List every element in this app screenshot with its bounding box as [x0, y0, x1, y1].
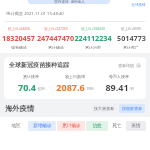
staticText: 统计截至 2021-11-01 15:48:40	[6, 11, 64, 17]
staticText: 死亡	[112, 123, 122, 129]
staticText: 224112234	[74, 33, 112, 43]
staticText: 累计确诊	[62, 123, 81, 129]
staticText: 每百人接种	[109, 74, 129, 79]
button[interactable]: 较上日+327265	[37, 25, 74, 50]
staticText: 现有确诊	[11, 45, 27, 49]
button[interactable]: 国内疫情 境外输入	[28, 0, 110, 4]
staticText: 按国家查看	[122, 106, 142, 111]
button[interactable]: 治愈	[86, 121, 108, 131]
staticText: 较上日+64456	[8, 26, 30, 31]
staticText: 万剂	[86, 87, 94, 92]
staticText: 累计死亡	[123, 45, 139, 49]
button[interactable]: 累计确诊	[57, 121, 85, 131]
staticText: 查看详情	[118, 63, 134, 68]
staticText: 累计接种	[23, 74, 39, 79]
staticText: 累计治愈	[85, 45, 101, 49]
staticText: 国内疫情 境外输入	[54, 0, 85, 4]
staticText: 较上日新增	[65, 74, 85, 79]
staticText: 新增确诊	[33, 123, 52, 129]
button[interactable]: 较上日+64456	[0, 25, 37, 50]
staticText: 剂	[130, 87, 134, 92]
staticText: 5014773	[117, 33, 146, 43]
button[interactable]: 较上日新增	[53, 74, 97, 93]
staticText: 海外疫情	[5, 104, 34, 113]
staticText: 较上日+6595	[121, 26, 141, 31]
staticText: 247447470	[37, 33, 74, 43]
button[interactable]: 按国家查看	[119, 104, 145, 113]
staticText: 按大洲查看	[94, 106, 114, 111]
button[interactable]: 全球疫情	[131, 3, 146, 8]
button[interactable]: 较上日+6595	[112, 25, 150, 50]
button[interactable]: 每百人接种	[97, 74, 141, 93]
staticText: 疫情	[131, 123, 141, 129]
staticText: 地区	[11, 123, 21, 129]
staticText: 较上日+327265	[44, 26, 68, 31]
button[interactable]: 查看详情	[118, 63, 141, 68]
staticText: 亿剂	[37, 87, 45, 92]
other: 查看详情	[136, 63, 141, 68]
staticText: 18320457	[2, 33, 35, 43]
button[interactable]: 疫情	[126, 121, 146, 131]
button[interactable]: 按大洲查看	[91, 104, 117, 113]
staticText: 全球疫情	[131, 3, 146, 8]
button[interactable]: 新增确诊	[28, 121, 56, 131]
staticText: 2087.6	[56, 81, 85, 93]
staticText: 89.41	[105, 81, 129, 93]
staticText: 较上日+358430	[81, 26, 105, 31]
button[interactable]: 较上日+358430	[74, 25, 112, 50]
staticText: 全球新冠疫苗接种追踪	[9, 61, 69, 69]
staticText: 治愈	[92, 123, 102, 129]
button[interactable]: 累计接种	[9, 74, 53, 93]
staticText: ›	[138, 63, 140, 68]
button[interactable]: 死亡	[108, 123, 126, 129]
staticText: 70.4	[18, 81, 36, 93]
staticText: 累计确诊	[48, 45, 64, 49]
